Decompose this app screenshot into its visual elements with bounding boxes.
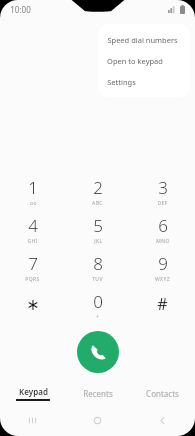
staticText: Speed dial numbers	[107, 35, 178, 45]
staticText: 5	[93, 214, 103, 237]
button[interactable]: Open to keypad	[98, 50, 190, 71]
button[interactable]: Recent apps	[0, 409, 65, 431]
button[interactable]: 4	[0, 211, 65, 249]
staticText: Settings	[107, 77, 136, 87]
button[interactable]: 7	[0, 249, 65, 287]
staticText: TUV	[92, 276, 103, 283]
staticText: PQRS	[25, 276, 40, 283]
staticText: DEF	[157, 200, 168, 207]
button[interactable]: Back	[130, 409, 195, 431]
staticText: 1	[28, 176, 38, 199]
button[interactable]: 8	[65, 249, 130, 287]
staticText: JKL	[94, 238, 103, 245]
button[interactable]: Settings	[98, 71, 190, 92]
staticText: 9	[158, 252, 168, 275]
button[interactable]: #	[130, 287, 195, 325]
staticText: 2	[93, 176, 103, 199]
staticText: Keypad	[19, 386, 48, 397]
staticText: MNO	[156, 238, 170, 245]
button[interactable]: ∗	[0, 287, 65, 325]
button[interactable]: Home	[65, 409, 130, 431]
staticText: ABC	[92, 200, 103, 207]
button[interactable]: Keypad	[0, 381, 65, 405]
button[interactable]: 3	[130, 173, 195, 211]
button[interactable]: 2	[65, 173, 130, 211]
button[interactable]: 5	[65, 211, 130, 249]
button[interactable]: 1	[0, 173, 65, 211]
staticText: GHI	[27, 238, 38, 245]
staticText: WXYZ	[155, 276, 170, 283]
staticText: +	[96, 314, 100, 321]
button[interactable]: Contacts	[130, 381, 195, 405]
staticText: Contacts	[146, 388, 179, 399]
staticText: 3	[158, 176, 168, 199]
staticText: ∗	[26, 295, 40, 314]
staticText: oo	[30, 200, 37, 207]
staticText: Recents	[83, 388, 113, 399]
button[interactable]: Recents	[65, 381, 130, 405]
button[interactable]: 9	[130, 249, 195, 287]
button[interactable]: Call	[77, 331, 119, 373]
staticText: 10:00	[10, 4, 31, 15]
button[interactable]: 0	[65, 287, 130, 325]
staticText: 7	[28, 252, 38, 275]
button[interactable]: Speed dial numbers	[98, 29, 190, 50]
staticText: 0	[93, 290, 103, 313]
staticText: Open to keypad	[107, 56, 163, 66]
staticText: #	[157, 293, 168, 315]
button[interactable]: 6	[130, 211, 195, 249]
staticText: 6	[158, 214, 168, 237]
staticText: 4	[28, 214, 38, 237]
staticText: 8	[93, 252, 103, 275]
